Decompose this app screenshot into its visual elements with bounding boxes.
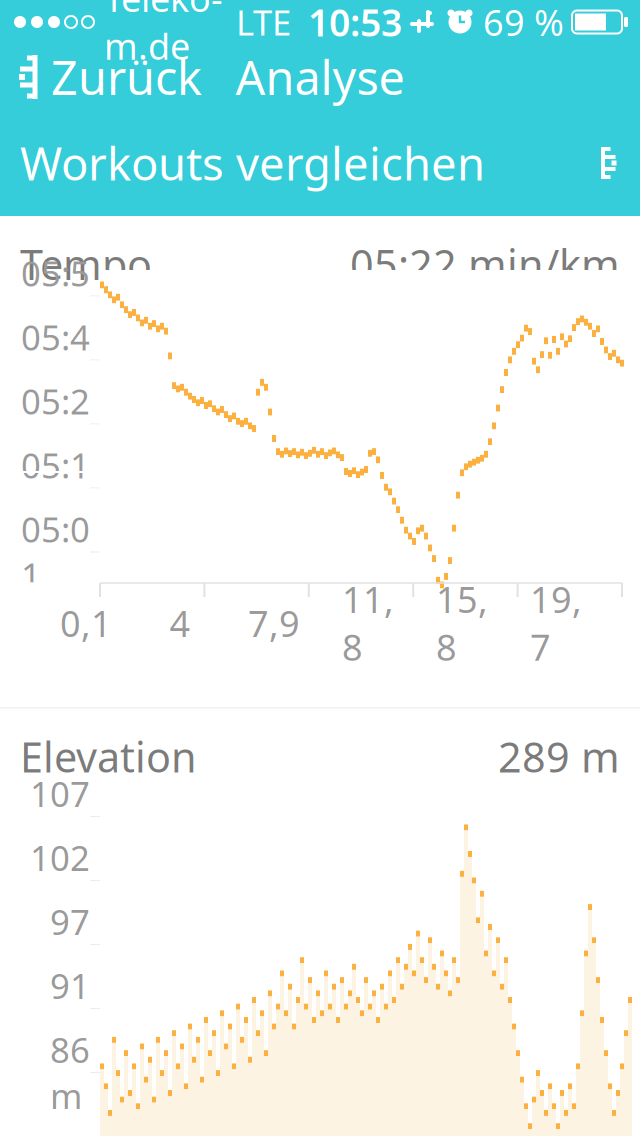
- staticText: 0,1: [60, 599, 112, 647]
- staticText: Telekom.de: [104, 0, 223, 70]
- staticText: Workouts vergleichen: [20, 133, 485, 193]
- staticText: 05:22 min/km: [350, 237, 620, 291]
- staticText: 05:15: [21, 442, 90, 534]
- button[interactable]: Zurück: [0, 44, 218, 110]
- staticText: 91 m: [50, 962, 90, 1055]
- staticText: 97 m: [50, 898, 90, 991]
- staticText: 19,7: [530, 575, 582, 671]
- staticText: 05:29: [21, 378, 90, 470]
- button[interactable]: Workouts vergleichen: [0, 110, 640, 216]
- staticText: 86 m: [50, 1026, 90, 1119]
- staticText: 05:01: [21, 506, 90, 598]
- staticText: 289 m: [498, 729, 620, 784]
- staticText: 10:53: [308, 0, 402, 47]
- staticText: Analyse: [235, 46, 404, 108]
- staticText: Elevation: [20, 729, 197, 784]
- staticText: 7,9: [248, 599, 300, 647]
- staticText: 107 m: [30, 770, 90, 863]
- staticText: Zurück: [51, 46, 202, 108]
- staticText: Tempo: [20, 237, 152, 291]
- staticText: LTE: [236, 0, 291, 45]
- staticText: 102 m: [30, 834, 90, 927]
- staticText: 05:44: [21, 314, 90, 406]
- staticText: 4: [169, 599, 190, 647]
- staticText: 05:58: [21, 250, 90, 342]
- staticText: 11,8: [342, 575, 394, 671]
- staticText: 69 %: [483, 0, 564, 46]
- staticText: 15,8: [436, 575, 488, 671]
